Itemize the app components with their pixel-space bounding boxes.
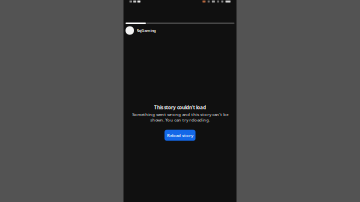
staticText: This story couldn't load xyxy=(154,104,206,111)
button[interactable]: RajGaming xyxy=(125,26,234,35)
staticText: Something went wrong and this story can'… xyxy=(132,111,228,123)
staticText: RajGaming xyxy=(136,28,155,33)
staticText: Reload story xyxy=(167,132,193,138)
button[interactable]: Reload story xyxy=(164,130,195,141)
